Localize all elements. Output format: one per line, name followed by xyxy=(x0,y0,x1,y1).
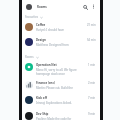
staticText: Design xyxy=(36,38,46,42)
staticText: Kick off xyxy=(36,96,47,100)
button[interactable]: More options xyxy=(90,3,97,10)
staticText: 21 min xyxy=(87,23,96,27)
button[interactable]: Profile xyxy=(26,4,32,10)
staticText: homepage stack once xyxy=(36,72,65,76)
staticText: Yuriyel: I should have xyxy=(36,28,64,32)
staticText: Mara: Hi, sorry to all. We figure xyxy=(36,68,77,72)
staticText: Finance (enc) xyxy=(36,81,55,85)
button[interactable]: Rooms xyxy=(22,51,100,61)
staticText: 2 min xyxy=(88,81,96,85)
button[interactable]: Coffee xyxy=(22,21,100,36)
staticText: 54 min xyxy=(87,38,96,42)
button[interactable]: Favourites xyxy=(22,13,100,21)
staticText: Operation Net xyxy=(36,63,57,67)
staticText: Irineaj: Explorations kicked. xyxy=(36,101,73,105)
staticText: 1 min xyxy=(88,63,96,67)
button[interactable]: Dev Ship xyxy=(22,110,100,120)
staticText: 9 min xyxy=(88,112,96,116)
staticText: 7 min xyxy=(88,96,96,100)
staticText: Pauline: Made the code for xyxy=(36,117,72,120)
button[interactable]: Search xyxy=(81,3,89,11)
button[interactable]: Operation Net xyxy=(22,61,100,79)
staticText: Rooms xyxy=(37,5,47,9)
button[interactable]: Design xyxy=(22,36,100,51)
button[interactable]: Finance (enc) xyxy=(22,79,100,94)
staticText: Rooms xyxy=(25,55,34,59)
staticText: Coffee xyxy=(36,23,46,27)
button[interactable]: Kick off xyxy=(22,94,100,110)
staticText: Dev Ship xyxy=(36,112,49,116)
staticText: Matthew: Designed from xyxy=(36,43,69,47)
staticText: Martin: Please cut. Build the xyxy=(36,86,73,90)
staticText: Favourites xyxy=(25,15,38,19)
